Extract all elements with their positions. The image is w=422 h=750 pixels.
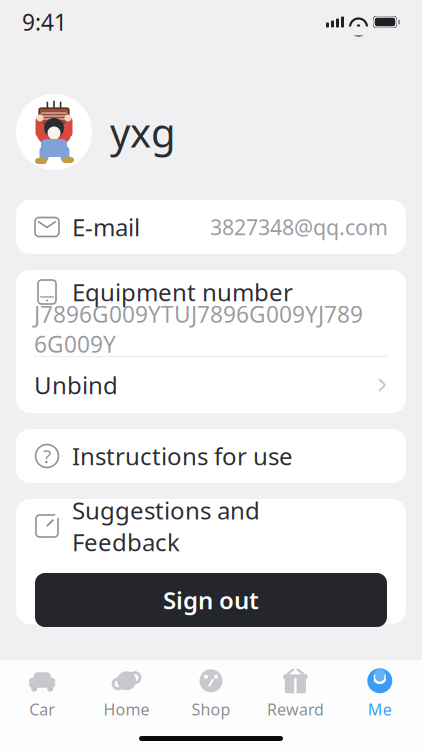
staticText: Me — [368, 699, 392, 720]
staticText: ? — [43, 444, 51, 468]
staticText: J7896G009YTUJ7896G009YJ7896G009Y — [34, 299, 363, 359]
staticText: Sign out — [163, 584, 259, 616]
staticText: Unbind — [34, 369, 118, 401]
staticText: Reward — [267, 699, 324, 720]
staticText: 3827348@qq.com — [210, 213, 388, 241]
button[interactable]: Reward — [253, 660, 338, 726]
staticText: 9:41 — [22, 7, 67, 37]
staticText: Instructions for use — [72, 440, 293, 472]
button[interactable]: Unbind — [16, 357, 406, 413]
button[interactable]: ? — [16, 429, 406, 483]
button[interactable]: Shop — [169, 660, 253, 726]
button[interactable]: Me — [338, 660, 422, 726]
staticText: Equipment number — [72, 276, 293, 308]
staticText: E-mail — [72, 211, 140, 243]
button[interactable]: Sign out — [35, 573, 387, 627]
staticText: Home — [104, 699, 150, 720]
button[interactable]: E-mail — [16, 200, 406, 254]
staticText: yxg — [110, 105, 176, 158]
button[interactable]: Home — [84, 660, 169, 726]
button[interactable]: Profile photo — [16, 94, 92, 170]
button[interactable]: Car — [0, 660, 84, 726]
staticText: Shop — [191, 699, 230, 720]
staticText: Car — [29, 699, 55, 720]
staticText: Suggestions and Feedback — [72, 494, 260, 558]
